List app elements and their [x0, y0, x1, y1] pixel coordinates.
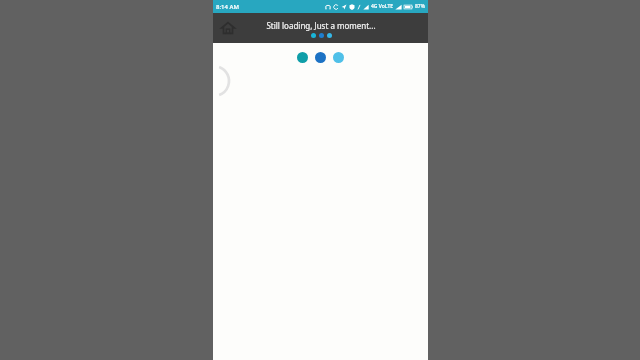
button[interactable]: Home — [217, 17, 239, 39]
staticText: Still loading, Just a moment... — [266, 20, 376, 31]
staticText: 87% — [415, 3, 425, 10]
staticText: 4G VoLTE — [371, 3, 393, 10]
staticText: 8:14 AM — [216, 3, 239, 11]
